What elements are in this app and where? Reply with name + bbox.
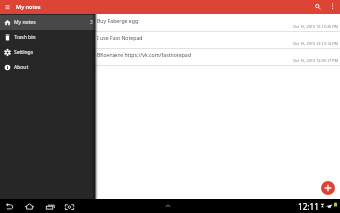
staticText: Oct 16, 2015 12:05:17 PM — [293, 58, 338, 63]
button[interactable]: Home — [24, 201, 35, 212]
button[interactable]: Buy Faberge egg — [95, 15, 340, 32]
button[interactable]: About — [0, 60, 95, 75]
staticText: Settings — [14, 49, 34, 56]
button[interactable]: ВКонтакте https://vk.com/fastnotepad — [95, 49, 340, 66]
button[interactable]: I use Fast Notepad — [95, 32, 340, 49]
staticText: My notes — [14, 19, 36, 26]
button[interactable]: Back — [4, 201, 15, 212]
staticText: 12:11 — [298, 201, 319, 212]
staticText: I use Fast Notepad — [97, 34, 143, 41]
button[interactable]: More options — [327, 1, 338, 12]
staticText: 3 — [90, 19, 93, 26]
staticText: My notes — [16, 3, 41, 11]
staticText: Oct 16, 2015 12:13:14 PM — [293, 41, 338, 46]
button[interactable]: Search — [312, 1, 323, 12]
staticText: About — [14, 64, 29, 71]
button[interactable]: Settings — [0, 45, 95, 60]
staticText: Buy Faberge egg — [97, 17, 139, 24]
staticText: Trash bin — [14, 34, 36, 41]
button[interactable]: Recent apps — [45, 201, 56, 212]
button[interactable]: Trash bin — [0, 30, 95, 45]
staticText: ВКонтакте https://vk.com/fastnotepad — [97, 51, 191, 58]
button[interactable]: My notes — [0, 15, 95, 30]
button[interactable]: Open navigation drawer — [2, 2, 13, 13]
button[interactable]: Screenshot — [64, 201, 75, 212]
button[interactable]: Add note — [321, 181, 335, 195]
staticText: Oct 16, 2015 12:15:35 PM — [293, 24, 338, 29]
